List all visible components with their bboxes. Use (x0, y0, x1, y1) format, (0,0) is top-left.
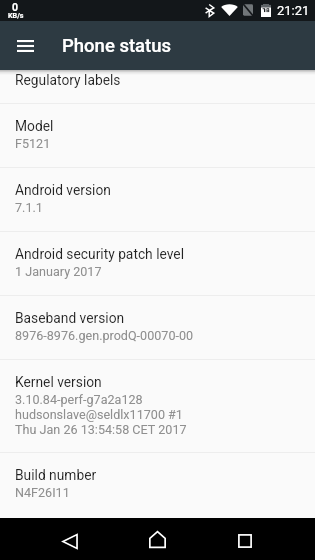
staticText: Kernel version (15, 374, 102, 390)
button[interactable]: Regulatory labels (0, 70, 315, 103)
staticText: Model (15, 118, 54, 134)
button[interactable]: Android version (0, 168, 315, 231)
button[interactable]: Home (135, 519, 180, 559)
button[interactable]: Build number (0, 453, 315, 516)
staticText: F5121 (15, 136, 51, 151)
staticText: Android version (15, 182, 111, 198)
staticText: 21:21 (277, 3, 310, 18)
staticText: 3.10.84-perf-g7a2a128 (15, 392, 143, 407)
staticText: Android security patch level (15, 246, 184, 262)
button[interactable]: Kernel version (0, 360, 315, 452)
staticText: Regulatory labels (15, 72, 121, 88)
staticText: 1 January 2017 (15, 264, 102, 279)
staticText: Phone status (62, 35, 172, 57)
staticText: 0 (12, 1, 19, 13)
staticText: KB/s (8, 11, 24, 19)
button[interactable]: Baseband version (0, 296, 315, 359)
staticText: Thu Jan 26 13:54:58 CET 2017 (15, 422, 187, 437)
button[interactable]: Back (48, 521, 92, 560)
button[interactable]: Android security patch level (0, 232, 315, 295)
button[interactable]: Recent apps (223, 521, 267, 560)
staticText: hudsonslave@seldlx11700 #1 (15, 407, 183, 422)
staticText: 8976-8976.gen.prodQ-00070-00 (15, 328, 194, 343)
staticText: N4F26I11 (15, 485, 70, 500)
staticText: 7.1.1 (15, 200, 43, 215)
button[interactable]: Model (0, 104, 315, 167)
staticText: Baseband version (15, 310, 125, 326)
staticText: Build number (15, 467, 97, 483)
button[interactable]: Open navigation menu (8, 29, 42, 63)
